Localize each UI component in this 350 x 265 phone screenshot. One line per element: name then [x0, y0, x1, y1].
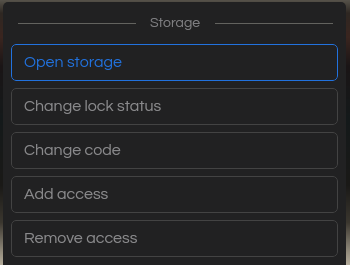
- button[interactable]: Remove access: [11, 220, 338, 257]
- button[interactable]: Change code: [11, 132, 338, 169]
- staticText: Add access: [24, 186, 109, 202]
- button[interactable]: Open storage: [11, 44, 338, 81]
- staticText: Open storage: [24, 54, 122, 70]
- staticText: Remove access: [24, 230, 138, 246]
- button[interactable]: Change lock status: [11, 88, 338, 125]
- button[interactable]: Add access: [11, 176, 338, 213]
- staticText: Storage: [150, 16, 201, 30]
- staticText: Change code: [24, 142, 121, 158]
- staticText: Change lock status: [24, 98, 162, 114]
